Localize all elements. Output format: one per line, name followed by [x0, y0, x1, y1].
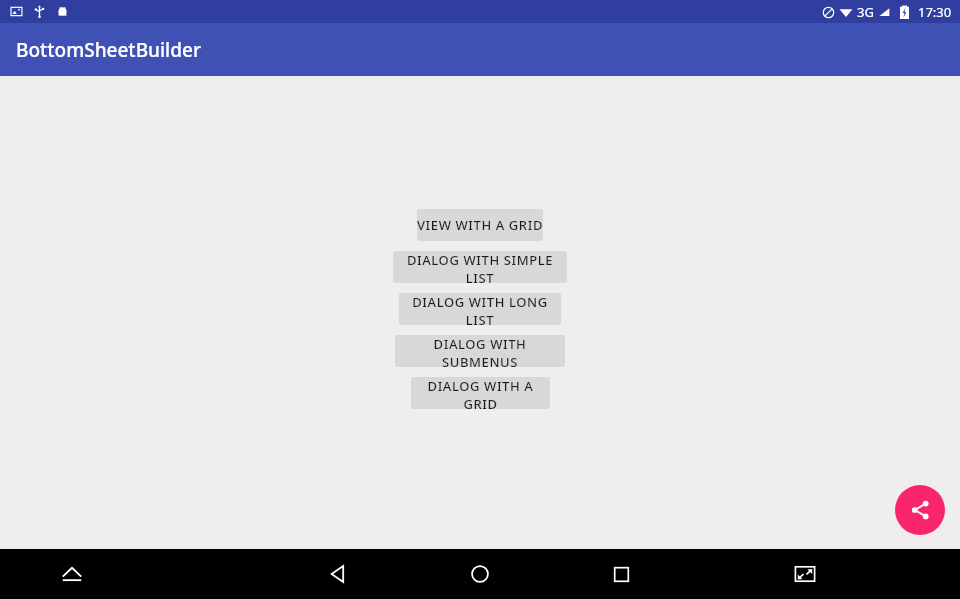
button[interactable]: DIALOG WITH SUBMENUS — [395, 335, 565, 367]
button[interactable]: DIALOG WITH SIMPLE LIST — [393, 251, 567, 283]
staticText: 3G — [857, 3, 874, 21]
button[interactable]: Share — [895, 485, 945, 535]
staticText: DIALOG WITH A GRID — [411, 377, 550, 409]
button[interactable]: DIALOG WITH A GRID — [411, 377, 550, 409]
staticText: 17:30 — [918, 3, 952, 21]
button[interactable]: VIEW WITH A GRID — [417, 209, 543, 241]
button[interactable]: Hide keyboard — [52, 554, 92, 594]
button[interactable]: Back — [318, 554, 358, 594]
staticText: VIEW WITH A GRID — [417, 216, 543, 234]
staticText: BottomSheetBuilder — [16, 37, 201, 63]
staticText: DIALOG WITH LONG LIST — [399, 293, 561, 325]
button[interactable]: Recent apps — [601, 554, 641, 594]
button[interactable]: Home — [460, 554, 500, 594]
button[interactable]: Shrink screen — [785, 554, 825, 594]
button[interactable]: DIALOG WITH LONG LIST — [399, 293, 561, 325]
staticText: DIALOG WITH SUBMENUS — [395, 335, 565, 367]
staticText: DIALOG WITH SIMPLE LIST — [393, 251, 567, 283]
